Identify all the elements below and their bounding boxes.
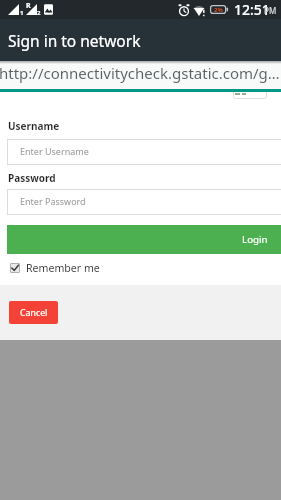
staticText: Sign in to network [8, 30, 141, 51]
staticText: 12:51 [234, 0, 270, 19]
staticText: Enter Username [20, 145, 89, 157]
button[interactable]: Enter Username [7, 139, 281, 165]
staticText: Enter Password [20, 195, 86, 207]
staticText: Login [242, 233, 268, 246]
staticText: PM [264, 5, 277, 16]
staticText: 2 [37, 9, 41, 17]
button[interactable]: Enter Password [7, 189, 281, 215]
staticText: R [26, 1, 31, 11]
button[interactable]: Cancel [9, 301, 58, 324]
staticText: Remember me [26, 261, 100, 275]
button[interactable]: Remember me checkbox [10, 261, 100, 275]
button[interactable]: Login [7, 225, 281, 254]
staticText: 1 [20, 9, 24, 17]
staticText: Cancel [20, 307, 48, 319]
staticText: http://connectivitycheck.gstatic.com/g… [0, 63, 280, 83]
other: Remember me checkbox [10, 263, 20, 273]
staticText: Username [8, 119, 60, 133]
staticText: Password [8, 171, 56, 185]
staticText: 2% [214, 6, 223, 14]
button[interactable]: http://connectivitycheck.gstatic.com/g… [0, 61, 281, 89]
